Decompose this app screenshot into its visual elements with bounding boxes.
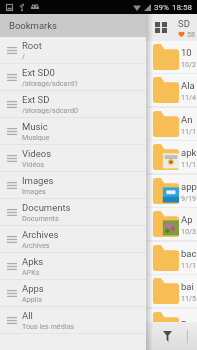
staticText: 1000 — [181, 47, 197, 58]
staticText: Tous les médias — [22, 322, 75, 330]
button[interactable]: 1000 — [0, 41, 197, 73]
staticText: Ext SD — [22, 94, 50, 105]
button[interactable]: And — [0, 108, 197, 140]
staticText: app — [181, 181, 197, 192]
staticText: Alarr — [181, 80, 197, 91]
button[interactable]: Grid view — [155, 22, 167, 33]
button[interactable]: Images — [0, 172, 146, 199]
staticText: /storage/sdcard0 — [22, 106, 78, 114]
staticText: baid — [181, 281, 197, 292]
staticText: 10/3 — [181, 227, 197, 235]
staticText: 10/2 — [181, 60, 197, 68]
staticText: 11/1 — [181, 160, 197, 168]
staticText: Vidéos — [22, 160, 44, 168]
staticText: 39% — [154, 3, 169, 12]
button[interactable]: Alarr — [0, 74, 197, 106]
staticText: apk — [181, 147, 197, 158]
button[interactable]: App — [0, 208, 197, 240]
staticText: Archives — [22, 229, 59, 240]
staticText: And — [181, 114, 197, 125]
button[interactable]: All — [0, 307, 146, 334]
staticText: 11/1 — [181, 127, 197, 135]
staticText: Applis — [22, 295, 42, 303]
button[interactable]: baid — [0, 275, 197, 307]
staticText: bac — [181, 248, 197, 259]
staticText: 58 f — [187, 30, 197, 38]
staticText: Musique — [22, 133, 50, 141]
staticText: Root — [22, 40, 42, 51]
staticText: Bookmarks — [9, 20, 58, 31]
button[interactable]: Ext SD — [0, 91, 146, 118]
staticText: /storage/sdcard1 — [22, 79, 78, 87]
staticText: 18:58 — [172, 3, 192, 12]
staticText: App — [181, 214, 197, 225]
button[interactable]: apk — [0, 141, 197, 173]
button[interactable]: app — [0, 175, 197, 207]
staticText: Archives — [22, 241, 50, 249]
button[interactable]: Barc — [0, 309, 197, 341]
staticText: 11/1 — [181, 261, 197, 269]
staticText: APKs — [22, 268, 40, 276]
staticText: SD ex — [178, 18, 197, 29]
button[interactable]: Apps — [0, 280, 146, 307]
staticText: Documents — [22, 214, 59, 222]
button[interactable]: Apks — [0, 253, 146, 280]
staticText: Images — [22, 175, 54, 186]
staticText: Ext SD0 — [22, 67, 55, 78]
button[interactable]: Ext SD0 — [0, 64, 146, 91]
staticText: All — [22, 310, 33, 321]
staticText: 11/5 — [181, 294, 197, 302]
button[interactable]: Root — [0, 37, 146, 64]
button[interactable]: Documents — [0, 199, 146, 226]
button[interactable]: bac — [0, 242, 197, 274]
staticText: 11/4 — [181, 93, 197, 101]
staticText: Apks — [22, 256, 44, 267]
staticText: 9/19 — [181, 194, 197, 202]
staticText: Apps — [22, 283, 44, 294]
staticText: Images — [22, 187, 46, 195]
staticText: Music — [22, 121, 48, 132]
button[interactable]: Archives — [0, 226, 146, 253]
staticText: / — [22, 52, 25, 60]
button[interactable]: Music — [0, 118, 146, 145]
button[interactable]: Videos — [0, 145, 146, 172]
button[interactable]: Filter — [148, 322, 187, 350]
staticText: Videos — [22, 148, 52, 159]
staticText: Documents — [22, 202, 71, 213]
staticText: Barc — [181, 319, 197, 330]
